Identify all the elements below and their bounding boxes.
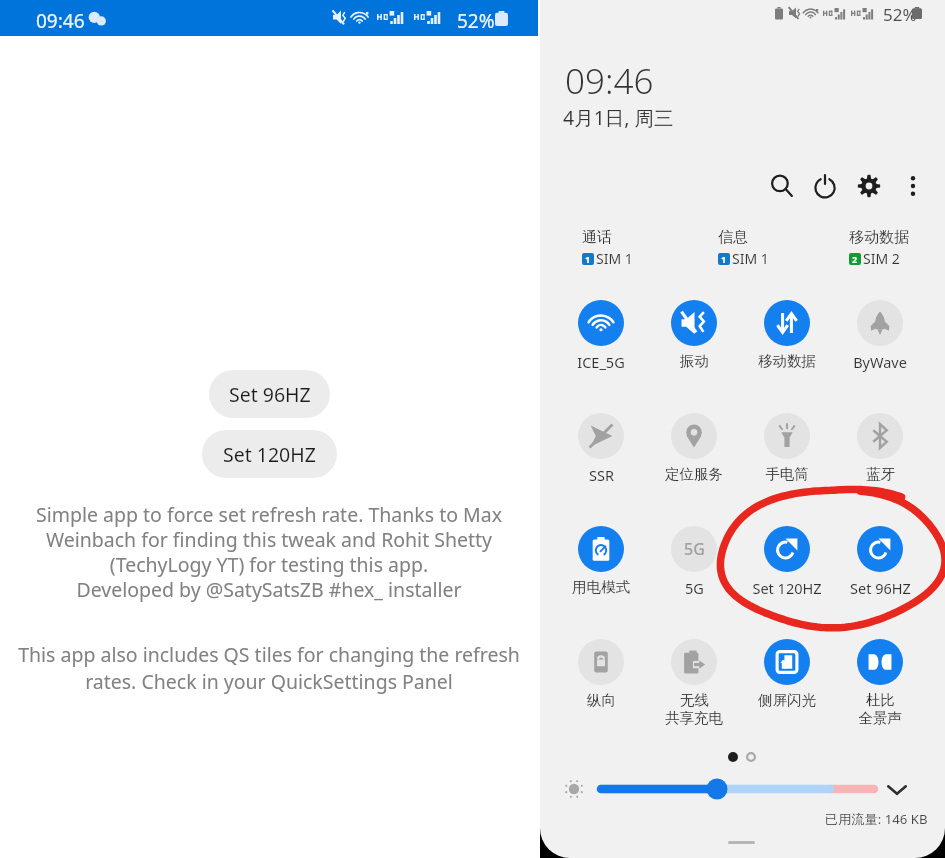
button[interactable]: ICE_5G bbox=[555, 300, 647, 372]
button[interactable]: 移动数据 bbox=[849, 228, 909, 268]
staticText: 5G bbox=[684, 538, 705, 560]
staticText: 手电筒 bbox=[765, 465, 809, 483]
button[interactable]: 信息 bbox=[718, 228, 769, 268]
staticText: 侧屏闪光 bbox=[758, 691, 816, 709]
staticText: 09:46 bbox=[565, 57, 654, 105]
staticText: 无线 bbox=[680, 691, 709, 709]
button[interactable]: Set 120HZ bbox=[202, 430, 337, 478]
staticText: SIM 1 bbox=[596, 249, 633, 268]
staticText: 蓝牙 bbox=[866, 465, 895, 483]
button[interactable]: ByWave bbox=[834, 300, 926, 372]
staticText: SSR bbox=[589, 465, 614, 485]
staticText: 定位服务 bbox=[665, 465, 723, 483]
staticText: 全景声 bbox=[858, 709, 902, 727]
button[interactable]: Search bbox=[762, 166, 802, 206]
staticText: 09:46 bbox=[36, 8, 85, 34]
button[interactable]: Set 96HZ bbox=[209, 370, 330, 418]
button[interactable]: Power bbox=[805, 166, 845, 206]
button[interactable]: 移动数据 bbox=[741, 300, 833, 370]
staticText: 通话 bbox=[582, 228, 612, 247]
button[interactable]: 用电模式 bbox=[555, 526, 647, 596]
staticText: 移动数据 bbox=[849, 228, 909, 247]
staticText: Simple app to force set refresh rate. Th… bbox=[14, 501, 524, 602]
staticText: 4月1日, 周三 bbox=[563, 104, 674, 131]
button[interactable]: Settings bbox=[849, 166, 889, 206]
staticText: Set 120HZ bbox=[752, 578, 822, 598]
staticText: Set 96HZ bbox=[850, 578, 911, 598]
staticText: ICE_5G bbox=[577, 352, 625, 372]
staticText: SIM 1 bbox=[732, 249, 769, 268]
staticText: 2 bbox=[852, 253, 858, 265]
button[interactable]: 杜比 bbox=[834, 639, 926, 727]
button[interactable]: 振动 bbox=[648, 300, 740, 370]
staticText: 振动 bbox=[680, 352, 709, 370]
button[interactable]: 无线 bbox=[648, 639, 740, 727]
staticText: 1 bbox=[721, 253, 727, 265]
button[interactable]: 手电筒 bbox=[741, 413, 833, 483]
button[interactable]: Expand quick settings bbox=[880, 772, 914, 806]
staticText: 纵向 bbox=[587, 691, 616, 709]
button[interactable]: 通话 bbox=[582, 228, 633, 268]
staticText: 已用流量: 146 KB bbox=[825, 810, 928, 828]
button[interactable]: 定位服务 bbox=[648, 413, 740, 483]
button[interactable]: Set 120HZ bbox=[741, 526, 833, 598]
button[interactable]: 蓝牙 bbox=[834, 413, 926, 483]
button[interactable]: 5G bbox=[648, 526, 740, 598]
staticText: 52% bbox=[883, 3, 917, 26]
button[interactable]: More options bbox=[893, 166, 933, 206]
button[interactable]: SSR bbox=[555, 413, 647, 485]
staticText: Set 120HZ bbox=[223, 441, 316, 468]
staticText: 5G bbox=[685, 578, 704, 598]
staticText: SIM 2 bbox=[863, 249, 900, 268]
button[interactable]: 侧屏闪光 bbox=[741, 639, 833, 709]
staticText: 杜比 bbox=[866, 691, 895, 709]
button[interactable]: 纵向 bbox=[555, 639, 647, 709]
staticText: 移动数据 bbox=[758, 352, 816, 370]
button[interactable]: Page 2 bbox=[746, 752, 756, 762]
staticText: 1 bbox=[585, 253, 591, 265]
staticText: Set 96HZ bbox=[229, 381, 311, 408]
button[interactable]: Page 1 bbox=[728, 752, 738, 762]
staticText: ByWave bbox=[853, 352, 907, 372]
staticText: 共享充电 bbox=[665, 709, 723, 727]
staticText: This app also includes QS tiles for chan… bbox=[10, 641, 528, 695]
button[interactable]: Brightness bbox=[598, 772, 878, 806]
staticText: 用电模式 bbox=[572, 578, 630, 596]
staticText: 52% bbox=[457, 8, 495, 34]
staticText: 信息 bbox=[718, 228, 748, 247]
button[interactable]: Set 96HZ bbox=[834, 526, 926, 598]
